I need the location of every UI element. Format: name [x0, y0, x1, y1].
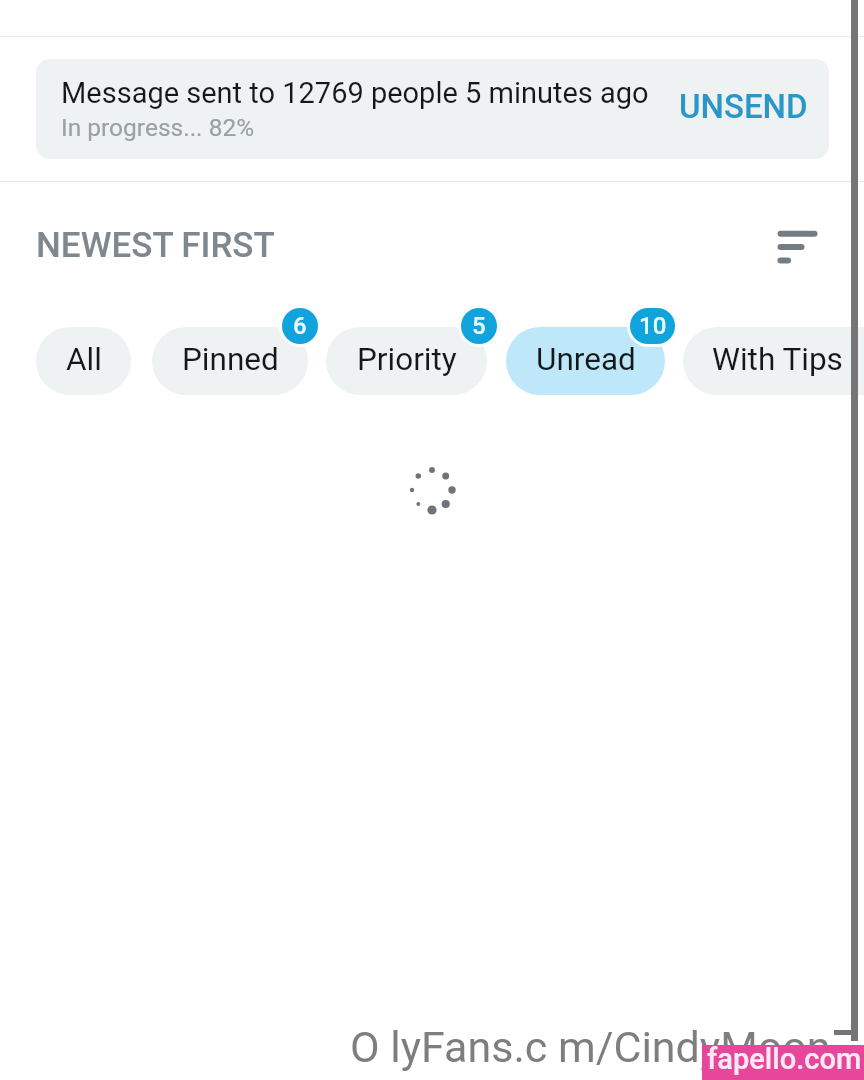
staticText: Unread — [536, 341, 636, 378]
staticText: Message sent to 12769 people 5 minutes a… — [61, 76, 649, 110]
staticText: NEWEST FIRST — [36, 225, 275, 266]
staticText: With Tips — [712, 341, 843, 378]
staticText: All — [66, 341, 102, 378]
staticText: In progress... 82% — [61, 113, 255, 142]
staticText: Pinned — [182, 341, 279, 378]
staticText: UNSEND — [679, 87, 808, 126]
staticText: 5 — [472, 312, 486, 340]
button[interactable]: NEWEST FIRST — [20, 200, 300, 280]
button[interactable]: Pinned — [152, 327, 308, 395]
staticText: O lyFans.c m/CindyMoon — [350, 1022, 831, 1072]
staticText: Priority — [357, 341, 457, 378]
button[interactable]: With Tips — [683, 327, 864, 395]
button[interactable]: All — [36, 327, 131, 395]
other: Loading — [402, 460, 462, 520]
button[interactable]: Priority — [326, 327, 487, 395]
staticText: 6 — [293, 312, 307, 340]
button[interactable]: Sort order — [763, 219, 827, 283]
staticText: 10 — [639, 312, 667, 340]
button[interactable]: Message sent to 12769 people 5 minutes a… — [36, 59, 829, 159]
button[interactable]: Unread — [506, 327, 665, 395]
button[interactable]: UNSEND — [667, 59, 819, 159]
staticText: fapello.com — [707, 1042, 862, 1076]
